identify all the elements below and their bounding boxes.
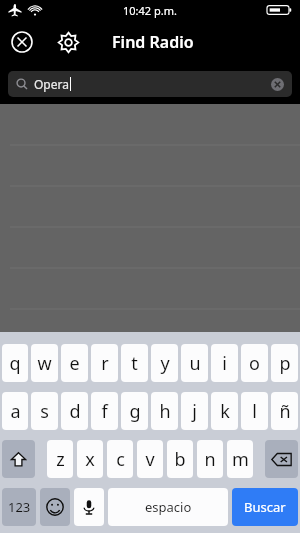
button[interactable]: espacio [108, 488, 228, 526]
button[interactable]: z [47, 440, 73, 478]
staticText: t [131, 351, 138, 376]
staticText: r [101, 351, 109, 376]
button[interactable]: w [31, 344, 58, 382]
staticText: d [69, 399, 81, 424]
staticText: 10:42 p.m. [123, 3, 177, 18]
button[interactable]: 123 [2, 488, 36, 526]
staticText: f [101, 399, 108, 424]
button[interactable]: g [121, 392, 148, 430]
button[interactable]: Shift [2, 440, 35, 478]
button[interactable]: ñ [271, 392, 298, 430]
button[interactable]: c [107, 440, 133, 478]
button[interactable]: f [91, 392, 118, 430]
staticText: w [37, 351, 52, 376]
staticText: e [69, 351, 80, 376]
staticText: z [56, 447, 65, 472]
staticText: ñ [279, 399, 291, 424]
button[interactable]: Emoji [40, 488, 70, 526]
button[interactable]: x [77, 440, 103, 478]
button[interactable]: l [241, 392, 268, 430]
button[interactable]: m [227, 440, 253, 478]
staticText: b [174, 447, 186, 472]
button[interactable]: t [121, 344, 148, 382]
staticText: k [220, 399, 230, 424]
staticText: m [232, 447, 249, 472]
staticText: y [160, 351, 170, 376]
button[interactable]: Opera [8, 71, 292, 97]
button[interactable]: b [167, 440, 193, 478]
staticText: p [279, 351, 291, 376]
button[interactable]: q [2, 344, 28, 382]
button[interactable]: j [181, 392, 208, 430]
button[interactable]: v [137, 440, 163, 478]
button[interactable]: Clear text [266, 73, 288, 95]
staticText: u [189, 351, 201, 376]
staticText: g [129, 399, 141, 424]
staticText: n [204, 447, 216, 472]
staticText: a [10, 399, 21, 424]
staticText: Opera [34, 76, 69, 92]
button[interactable]: Backspace [265, 440, 298, 478]
button[interactable]: o [241, 344, 268, 382]
staticText: Find Radio [112, 31, 194, 53]
staticText: l [252, 399, 257, 424]
staticText: o [249, 351, 260, 376]
button[interactable]: d [61, 392, 88, 430]
staticText: j [192, 399, 197, 424]
button[interactable]: s [31, 392, 58, 430]
button[interactable]: a [2, 392, 28, 430]
button[interactable]: i [211, 344, 238, 382]
button[interactable]: Close [0, 20, 44, 64]
button[interactable]: Buscar [232, 488, 298, 526]
staticText: c [116, 447, 125, 472]
staticText: 123 [8, 498, 31, 516]
staticText: v [145, 447, 155, 472]
button[interactable]: u [181, 344, 208, 382]
staticText: espacio [145, 498, 192, 516]
staticText: x [85, 447, 95, 472]
button[interactable]: y [151, 344, 178, 382]
button[interactable]: r [91, 344, 118, 382]
staticText: i [222, 351, 227, 376]
button[interactable]: k [211, 392, 238, 430]
staticText: q [9, 351, 21, 376]
button[interactable]: Settings [46, 20, 90, 64]
button[interactable]: h [151, 392, 178, 430]
staticText: Buscar [244, 498, 286, 516]
button[interactable]: e [61, 344, 88, 382]
staticText: h [159, 399, 171, 424]
button[interactable]: p [271, 344, 298, 382]
button[interactable]: n [197, 440, 223, 478]
button[interactable]: Dictation [74, 488, 104, 526]
staticText: s [40, 399, 49, 424]
